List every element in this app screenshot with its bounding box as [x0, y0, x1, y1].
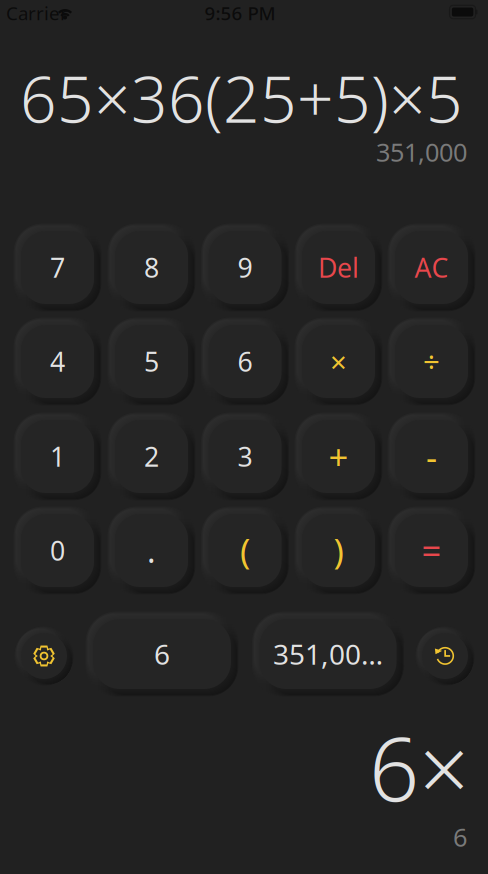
- staticText: 6: [237, 344, 252, 379]
- button[interactable]: +: [302, 420, 375, 493]
- button[interactable]: History: [422, 633, 468, 679]
- button[interactable]: 8: [115, 231, 188, 304]
- staticText: AC: [414, 250, 448, 285]
- button[interactable]: 6: [208, 325, 281, 398]
- staticText: -: [426, 433, 437, 479]
- button[interactable]: ÷: [395, 325, 468, 398]
- staticText: 4: [50, 344, 65, 379]
- staticText: 6×: [369, 709, 469, 825]
- button[interactable]: =: [395, 514, 468, 587]
- button[interactable]: 7: [21, 231, 94, 304]
- button[interactable]: Del: [302, 231, 375, 304]
- button[interactable]: (: [208, 514, 281, 587]
- staticText: ): [333, 527, 343, 573]
- staticText: 0: [50, 533, 65, 568]
- button[interactable]: 0: [21, 514, 94, 587]
- button[interactable]: .: [115, 514, 188, 587]
- staticText: 6: [154, 635, 170, 673]
- staticText: 3: [237, 439, 252, 474]
- staticText: +: [328, 433, 348, 479]
- button[interactable]: ×: [302, 325, 375, 398]
- staticText: 8: [144, 250, 159, 285]
- staticText: 1: [50, 439, 65, 474]
- button[interactable]: 4: [21, 325, 94, 398]
- button[interactable]: Settings: [21, 633, 67, 679]
- button[interactable]: 5: [115, 325, 188, 398]
- staticText: Carrier: [6, 1, 68, 25]
- button[interactable]: 351,00…: [259, 619, 396, 689]
- staticText: ×: [330, 342, 347, 381]
- staticText: 9: [237, 250, 252, 285]
- staticText: 7: [50, 250, 65, 285]
- button[interactable]: -: [395, 420, 468, 493]
- button[interactable]: 2: [115, 420, 188, 493]
- staticText: 2: [144, 439, 159, 474]
- staticText: 6: [453, 820, 467, 854]
- button[interactable]: 1: [21, 420, 94, 493]
- staticText: ÷: [423, 342, 440, 381]
- button[interactable]: 3: [208, 420, 281, 493]
- staticText: 351,00…: [273, 635, 383, 673]
- staticText: (: [240, 527, 250, 573]
- staticText: 351,000: [376, 135, 467, 169]
- button[interactable]: ): [302, 514, 375, 587]
- staticText: 65×36(25+5)×5: [20, 55, 463, 140]
- staticText: =: [421, 527, 441, 573]
- button[interactable]: 9: [208, 231, 281, 304]
- staticText: 9:56 PM: [204, 1, 275, 25]
- staticText: Del: [318, 250, 359, 285]
- button[interactable]: 6: [93, 619, 231, 689]
- staticText: .: [147, 529, 156, 572]
- button[interactable]: AC: [395, 231, 468, 304]
- staticText: 5: [144, 344, 159, 379]
